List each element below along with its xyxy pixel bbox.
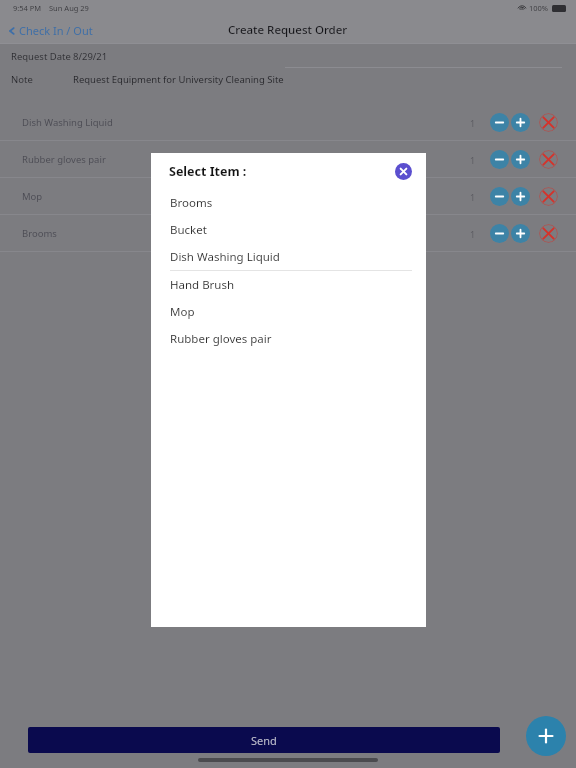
button[interactable]: Brooms [151, 189, 426, 216]
staticText: 1 [470, 154, 476, 166]
staticText: Create Request Order [228, 22, 348, 38]
staticText: Dish Washing Liquid [170, 249, 280, 265]
staticText: Request Equipment for University Cleanin… [73, 73, 284, 86]
staticText: 1 [470, 228, 476, 240]
staticText: Brooms [22, 227, 57, 240]
button[interactable]: Rubber gloves pair [0, 141, 576, 177]
staticText: Bucket [170, 222, 207, 238]
button[interactable]: Dish Washing Liquid [151, 243, 426, 271]
staticText: Request Date [11, 50, 71, 63]
staticText: 1 [470, 117, 476, 129]
button[interactable]: Mop [151, 298, 426, 325]
staticText: Sun Aug 29 [49, 3, 89, 13]
staticText: 8/29/21 [73, 50, 108, 63]
staticText: 9:54 PM [13, 3, 42, 13]
staticText: Brooms [170, 195, 213, 211]
button[interactable]: Brooms [0, 215, 576, 251]
staticText: Hand Brush [170, 277, 235, 293]
button[interactable]: Increase [511, 113, 530, 132]
staticText: Rubber gloves pair [22, 153, 106, 166]
staticText: Note [11, 73, 33, 86]
staticText: Send [251, 733, 277, 748]
button[interactable]: Hand Brush [151, 271, 426, 298]
button[interactable]: Decrease [490, 150, 509, 169]
button[interactable]: Remove Mop [539, 187, 558, 206]
button[interactable]: Remove Dish Washing Liquid [539, 113, 558, 132]
button[interactable]: Mop [0, 178, 576, 214]
button[interactable]: Decrease [490, 113, 509, 132]
button[interactable]: Check In / Out [7, 23, 93, 38]
button[interactable]: Increase [511, 150, 530, 169]
button[interactable]: Dish Washing Liquid [0, 104, 576, 140]
button[interactable]: Bucket [151, 216, 426, 243]
button[interactable]: Increase [511, 224, 530, 243]
staticText: Select Item : [169, 163, 247, 180]
staticText: Dish Washing Liquid [22, 116, 113, 129]
button[interactable]: Rubber gloves pair [151, 325, 426, 352]
staticText: Check In / Out [19, 23, 93, 38]
staticText: 100% [529, 3, 549, 13]
staticText: Mop [170, 304, 195, 320]
staticText: 1 [470, 191, 476, 203]
button[interactable]: Decrease [490, 187, 509, 206]
staticText: Rubber gloves pair [170, 331, 272, 347]
button[interactable]: Add item [526, 716, 566, 756]
button[interactable]: Decrease [490, 224, 509, 243]
button[interactable]: Send [28, 727, 500, 753]
button[interactable]: Remove Rubber gloves pair [539, 150, 558, 169]
staticText: Mop [22, 190, 43, 203]
button[interactable]: Increase [511, 187, 530, 206]
button[interactable]: Remove Brooms [539, 224, 558, 243]
button[interactable]: Close [395, 163, 412, 180]
